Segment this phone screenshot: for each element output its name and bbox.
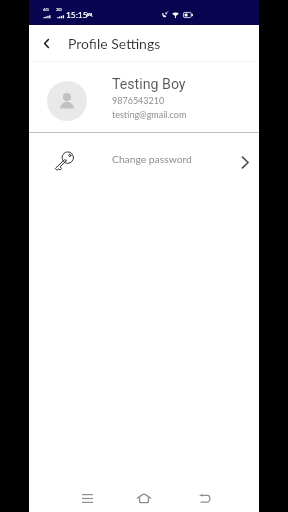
button[interactable]: Home: [130, 484, 158, 512]
staticText: Testing Boy: [112, 76, 186, 93]
staticText: 15:15: [66, 10, 88, 20]
staticText: Change password: [112, 153, 192, 165]
staticText: testing@gmail.com: [112, 109, 187, 120]
staticText: Profile Settings: [68, 35, 161, 52]
button[interactable]: Change password: [29, 133, 259, 190]
staticText: 9876543210: [112, 95, 165, 106]
button[interactable]: Back: [33, 30, 59, 56]
staticText: 3G: [56, 7, 62, 12]
button[interactable]: Testing Boy: [29, 62, 259, 132]
button[interactable]: Back: [191, 484, 219, 512]
staticText: 4G: [43, 7, 49, 12]
button[interactable]: Recent apps: [73, 484, 101, 512]
